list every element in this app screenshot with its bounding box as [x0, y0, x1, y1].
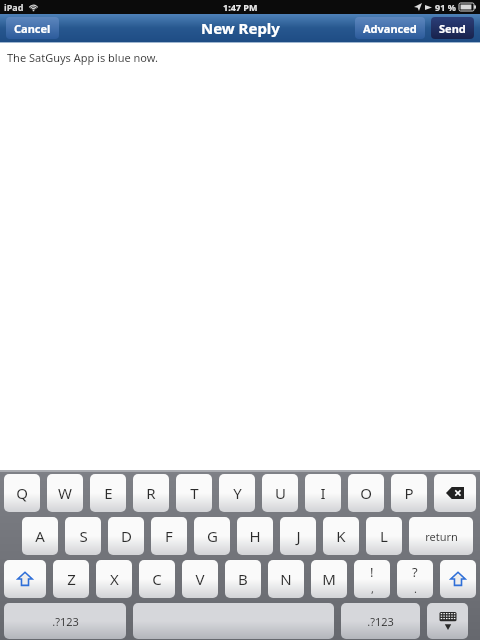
button[interactable]: Y — [219, 474, 255, 512]
button[interactable]: Z — [53, 560, 89, 598]
button[interactable]: Q — [4, 474, 40, 512]
button[interactable]: C — [139, 560, 175, 598]
button[interactable]: Send — [439, 17, 466, 39]
button[interactable]: Advanced — [363, 17, 417, 39]
staticText: P — [404, 483, 414, 503]
staticText: X — [110, 569, 119, 589]
button[interactable]: E — [90, 474, 126, 512]
staticText: A — [35, 526, 45, 546]
staticText: R — [146, 483, 156, 503]
button[interactable]: ? — [397, 560, 433, 598]
staticText: H — [249, 526, 261, 546]
button[interactable]: S — [65, 517, 101, 555]
staticText: T — [190, 483, 199, 503]
button[interactable]: V — [182, 560, 218, 598]
staticText: 91 % — [435, 1, 456, 13]
staticText: .?123 — [52, 614, 79, 629]
staticText: M — [322, 569, 336, 589]
button[interactable]: I — [305, 474, 341, 512]
staticText: V — [195, 569, 205, 589]
button[interactable]: ! — [354, 560, 390, 598]
button[interactable]: L — [366, 517, 402, 555]
staticText: ! — [370, 563, 374, 581]
staticText: K — [336, 526, 346, 546]
staticText: C — [152, 569, 162, 589]
button[interactable]: Backspace — [434, 474, 476, 512]
button[interactable]: H — [237, 517, 273, 555]
staticText: Send — [439, 21, 466, 36]
button[interactable]: F — [151, 517, 187, 555]
staticText: G — [207, 526, 218, 546]
button[interactable]: U — [262, 474, 298, 512]
button[interactable]: return — [409, 517, 473, 555]
staticText: Y — [233, 483, 242, 503]
button[interactable]: T — [176, 474, 212, 512]
button[interactable]: .?123 — [341, 603, 420, 639]
staticText: .?123 — [367, 614, 394, 629]
staticText: S — [79, 526, 88, 546]
staticText: 1:47 PM — [223, 1, 258, 13]
staticText: Advanced — [363, 21, 417, 36]
button[interactable]: A — [22, 517, 58, 555]
button[interactable]: .?123 — [4, 603, 126, 639]
button[interactable]: W — [47, 474, 83, 512]
staticText: E — [104, 483, 113, 503]
button[interactable]: N — [268, 560, 304, 598]
staticText: Z — [67, 569, 76, 589]
staticText: New Reply — [201, 18, 280, 38]
staticText: L — [380, 526, 388, 546]
button[interactable]: X — [96, 560, 132, 598]
button[interactable]: D — [108, 517, 144, 555]
button[interactable]: Space — [133, 603, 334, 639]
staticText: B — [238, 569, 248, 589]
staticText: D — [121, 526, 132, 546]
staticText: N — [280, 569, 292, 589]
button[interactable]: O — [348, 474, 384, 512]
staticText: O — [360, 483, 372, 503]
button[interactable]: Shift — [440, 560, 476, 598]
staticText: Q — [16, 483, 28, 503]
staticText: , — [371, 581, 374, 596]
staticText: F — [165, 526, 173, 546]
button[interactable]: R — [133, 474, 169, 512]
button[interactable]: K — [323, 517, 359, 555]
staticText: Cancel — [14, 21, 51, 36]
staticText: J — [296, 526, 301, 546]
button[interactable]: J — [280, 517, 316, 555]
button[interactable]: B — [225, 560, 261, 598]
staticText: iPad — [4, 1, 24, 13]
staticText: The SatGuys App is blue now. — [7, 50, 158, 65]
button[interactable]: P — [391, 474, 427, 512]
staticText: ? — [412, 563, 418, 581]
button[interactable]: G — [194, 517, 230, 555]
button[interactable]: Shift — [4, 560, 46, 598]
staticText: . — [414, 581, 417, 596]
button[interactable]: Hide keyboard — [427, 603, 468, 639]
staticText: I — [320, 483, 326, 503]
button[interactable]: Cancel — [14, 17, 51, 39]
staticText: return — [425, 529, 458, 544]
button[interactable]: M — [311, 560, 347, 598]
staticText: U — [275, 483, 286, 503]
staticText: W — [58, 483, 72, 503]
